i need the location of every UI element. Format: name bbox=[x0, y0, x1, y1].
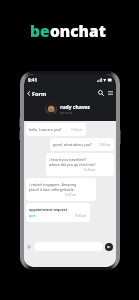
staticText: Form bbox=[32, 90, 47, 97]
staticText: 10:46 am bbox=[99, 143, 111, 147]
button[interactable]: Menu bbox=[106, 88, 115, 98]
staticText: where did you go this time? bbox=[49, 162, 96, 167]
button[interactable]: appointment request bbox=[26, 203, 90, 222]
staticText: i visited singapore. Amazing bbox=[29, 182, 77, 187]
staticText: personal bbox=[60, 111, 73, 115]
staticText: place! it was unforgettable. bbox=[29, 187, 75, 192]
staticText: 10:45 am bbox=[71, 128, 83, 132]
staticText: i heard you travelled!? bbox=[49, 157, 87, 162]
staticText: open bbox=[29, 214, 36, 218]
button[interactable]: rudy chavez bbox=[45, 100, 112, 118]
button[interactable]: Form bbox=[24, 88, 51, 99]
staticText: 9:41 bbox=[28, 77, 37, 83]
staticText: good, what about you? bbox=[53, 142, 92, 147]
button[interactable]: Send bbox=[105, 243, 113, 251]
staticText: appointment request bbox=[29, 207, 68, 212]
staticText: 10:47 am bbox=[65, 193, 77, 197]
staticText: 10:46 am bbox=[84, 168, 96, 172]
button[interactable]: Search bbox=[96, 88, 106, 98]
staticText: 10:50 am bbox=[75, 214, 87, 218]
staticText: onchat bbox=[50, 20, 106, 41]
staticText: rudy chavez bbox=[60, 104, 90, 111]
button[interactable]: Attach bbox=[25, 243, 33, 251]
staticText: hello, how are you? bbox=[29, 127, 62, 132]
staticText: be bbox=[30, 20, 50, 41]
